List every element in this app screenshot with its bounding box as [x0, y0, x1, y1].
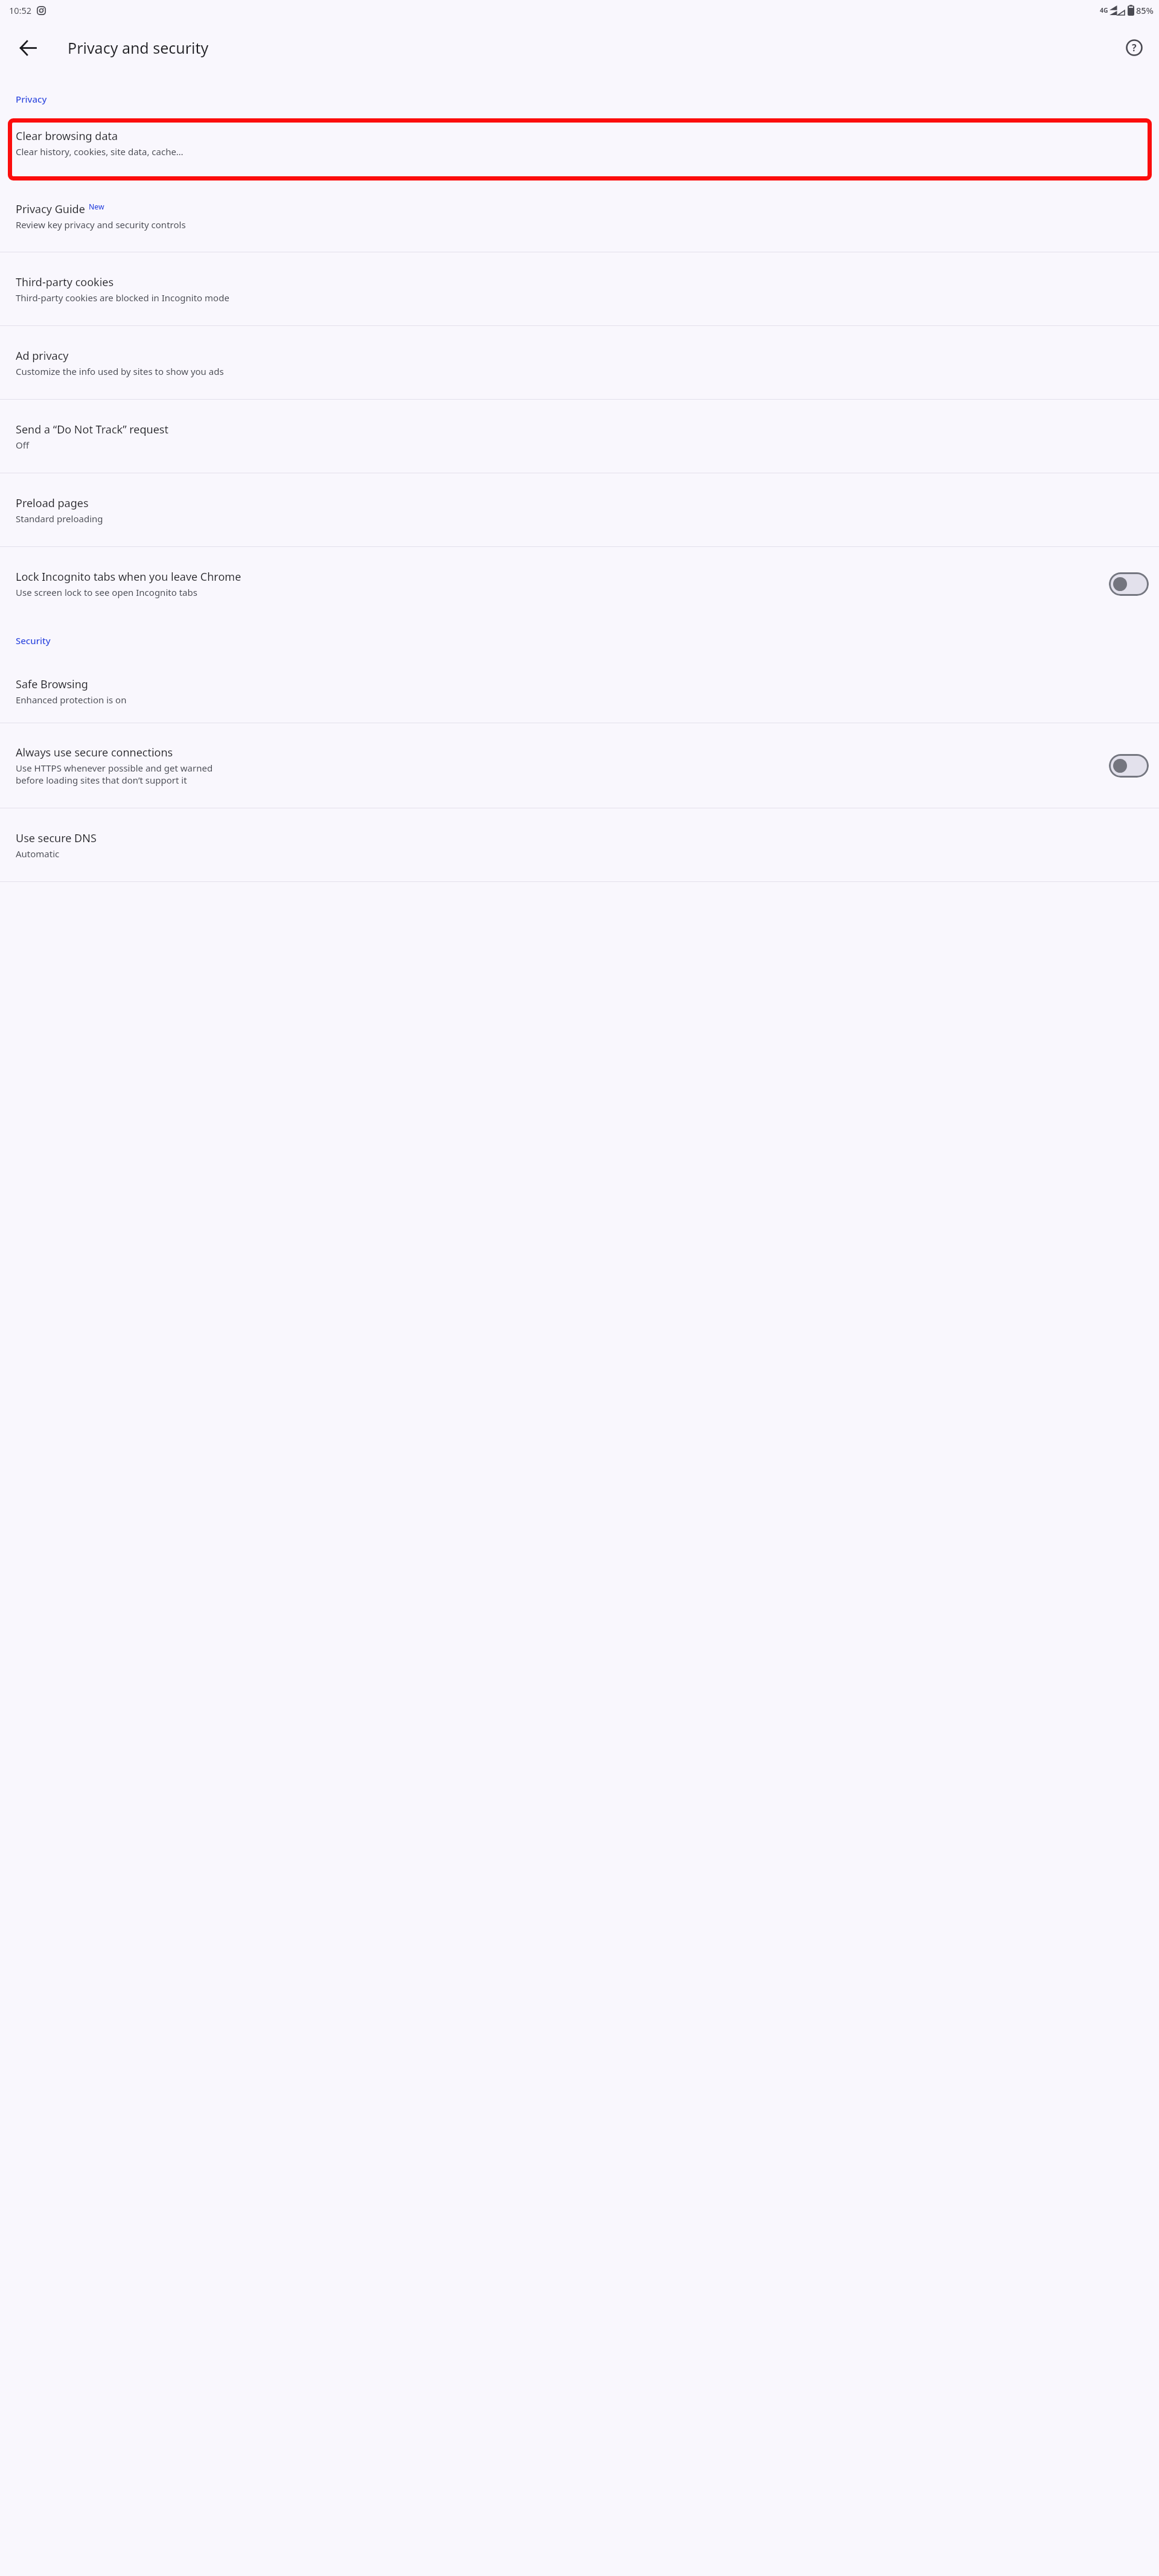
staticText: ? [1132, 41, 1137, 54]
button[interactable]: Lock Incognito tabs when you leave Chrom… [1106, 569, 1152, 599]
staticText: 85% [1136, 4, 1154, 16]
staticText: Clear browsing data [16, 129, 118, 144]
staticText: Third-party cookies are blocked in Incog… [16, 292, 229, 304]
staticText: 10:52 [9, 4, 32, 16]
button[interactable]: Send a “Do Not Track” request [0, 400, 1159, 473]
button[interactable]: Privacy Guide New [0, 181, 1159, 252]
staticText: Enhanced protection is on [16, 694, 127, 706]
staticText: Automatic [16, 848, 60, 860]
staticText: Review key privacy and security controls [16, 219, 186, 231]
staticText: Preload pages [16, 496, 89, 511]
staticText: Off [16, 439, 30, 451]
button[interactable]: Lock Incognito tabs when you leave Chrom… [0, 547, 1159, 620]
button[interactable]: Use secure DNS [0, 808, 1159, 881]
staticText: Use screen lock to see open Incognito ta… [16, 586, 197, 598]
button[interactable]: Always use secure connections [0, 723, 1159, 808]
button[interactable]: Safe Browsing [0, 660, 1159, 723]
staticText: Clear history, cookies, site data, cache… [16, 145, 184, 158]
staticText: Privacy [16, 93, 47, 105]
staticText: Send a “Do Not Track” request [16, 422, 168, 437]
staticText: Privacy Guide New [16, 202, 104, 217]
staticText: 4G [1100, 6, 1108, 14]
staticText: Safe Browsing [16, 677, 88, 692]
staticText: Always use secure connections [16, 745, 173, 760]
staticText: Lock Incognito tabs when you leave Chrom… [16, 569, 241, 584]
staticText: Third-party cookies [16, 275, 114, 290]
staticText: Customize the info used by sites to show… [16, 365, 224, 377]
staticText: Use secure DNS [16, 831, 97, 846]
staticText: Privacy and security [68, 37, 209, 58]
button[interactable]: Clear browsing data [8, 118, 1152, 181]
button[interactable]: Preload pages [0, 473, 1159, 546]
staticText: Security [16, 634, 51, 647]
button[interactable]: Back [11, 31, 45, 65]
staticText: Standard preloading [16, 513, 103, 525]
staticText: before loading sites that don’t support … [16, 774, 187, 786]
button[interactable]: Help [1117, 31, 1151, 65]
button[interactable]: Third-party cookies [0, 252, 1159, 325]
button[interactable]: Ad privacy [0, 326, 1159, 399]
staticText: Use HTTPS whenever possible and get warn… [16, 762, 213, 774]
staticText: Ad privacy [16, 348, 69, 363]
button[interactable]: Always use secure connections [1106, 750, 1152, 781]
